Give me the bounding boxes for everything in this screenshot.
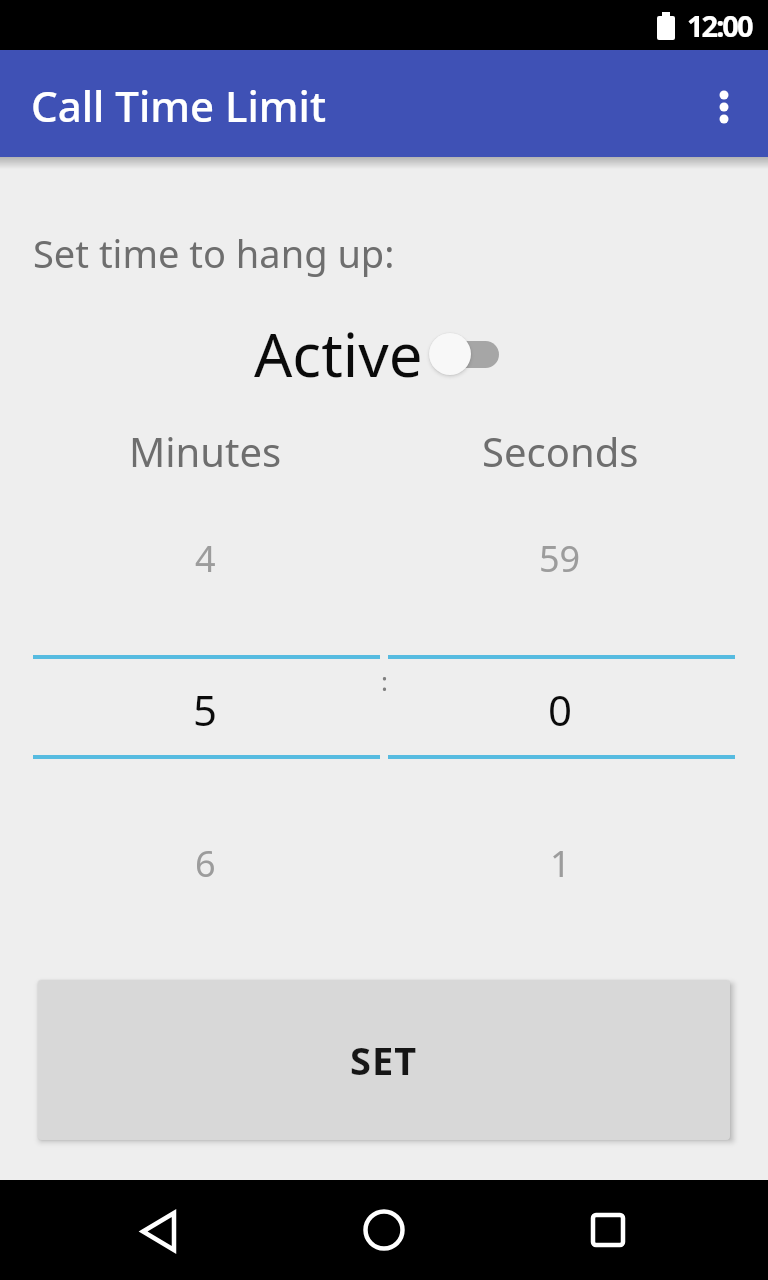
button[interactable] bbox=[134, 1204, 186, 1256]
button[interactable] bbox=[582, 1204, 634, 1256]
button[interactable] bbox=[33, 510, 380, 910]
staticText: 6 bbox=[195, 839, 216, 888]
staticText: Call Time Limit bbox=[31, 77, 327, 134]
staticText: SET bbox=[350, 1034, 418, 1086]
button[interactable] bbox=[429, 330, 499, 378]
button[interactable] bbox=[704, 87, 744, 127]
button[interactable] bbox=[388, 510, 735, 910]
button[interactable]: SET bbox=[38, 980, 730, 1140]
staticText: Active bbox=[254, 313, 423, 395]
staticText: : bbox=[381, 663, 388, 698]
button[interactable] bbox=[358, 1204, 410, 1256]
staticText: 12:00 bbox=[687, 6, 752, 45]
staticText: Set time to hang up: bbox=[33, 227, 395, 279]
staticText: 59 bbox=[539, 534, 581, 583]
staticText: Seconds bbox=[482, 424, 639, 478]
staticText: 0 bbox=[548, 681, 573, 738]
staticText: 5 bbox=[193, 681, 218, 738]
staticText: Minutes bbox=[129, 424, 282, 478]
staticText: 1 bbox=[550, 839, 571, 888]
staticText: 4 bbox=[195, 534, 216, 583]
